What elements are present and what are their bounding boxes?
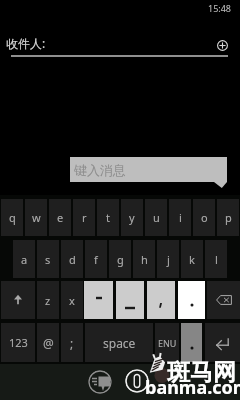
staticText: p [225, 210, 232, 225]
staticText: q [9, 210, 16, 225]
staticText: banma.com [145, 375, 240, 400]
staticText: k [189, 252, 195, 267]
button[interactable]: t [97, 199, 119, 236]
button[interactable]: d [61, 240, 83, 278]
button[interactable]: ; [61, 323, 83, 362]
staticText: o [201, 210, 208, 225]
staticText: d [69, 252, 76, 267]
button[interactable]: a [13, 240, 35, 278]
staticText: l [215, 252, 218, 267]
button[interactable]: underscore [116, 281, 144, 319]
button[interactable]: h [133, 240, 155, 278]
button[interactable]: Backspace [207, 281, 240, 319]
staticText: s [45, 252, 51, 267]
button[interactable]: s [37, 240, 59, 278]
button[interactable]: k [181, 240, 203, 278]
staticText: z [45, 293, 51, 308]
button[interactable]: Messages [88, 370, 112, 394]
button[interactable]: hyphen [84, 281, 113, 319]
button[interactable]: g [109, 240, 131, 278]
staticText: f [94, 252, 98, 267]
button[interactable]: o [193, 199, 215, 236]
button[interactable]: Shift [1, 281, 35, 319]
staticText: r [82, 210, 87, 225]
staticText: g [117, 252, 124, 267]
button[interactable]: e [49, 199, 71, 236]
staticText: ; [70, 335, 74, 351]
staticText: t [106, 210, 110, 225]
staticText: e [57, 210, 64, 225]
button[interactable]: ENU [155, 323, 179, 362]
button[interactable]: u [145, 199, 167, 236]
staticText: w [32, 210, 41, 225]
staticText: 123 [9, 335, 28, 350]
button[interactable]: z [37, 281, 59, 319]
button[interactable]: q [1, 199, 23, 236]
staticText: space [103, 335, 136, 351]
staticText: y [129, 210, 135, 225]
staticText: a [21, 252, 28, 267]
staticText: @ [43, 335, 54, 351]
button[interactable]: r [73, 199, 95, 236]
staticText: x [69, 293, 75, 308]
button[interactable]: comma [147, 281, 175, 319]
staticText: 键入消息 [74, 162, 126, 178]
button[interactable]: period [178, 281, 205, 319]
staticText: i [179, 210, 182, 225]
staticText: 15:48 [208, 2, 232, 14]
button[interactable]: space [85, 323, 153, 362]
button[interactable]: j [157, 240, 179, 278]
button[interactable]: Add recipient [217, 40, 228, 51]
staticText: h [141, 252, 148, 267]
staticText: 收件人: [6, 35, 46, 51]
button[interactable]: p [217, 199, 239, 236]
button[interactable]: f [85, 240, 107, 278]
button[interactable]: 123 [1, 323, 35, 362]
staticText: ENU [158, 337, 177, 349]
button[interactable]: @ [37, 323, 59, 362]
staticText: j [167, 252, 170, 267]
button[interactable]: period [181, 323, 202, 362]
button[interactable]: Attach [125, 369, 149, 393]
button[interactable]: i [169, 199, 191, 236]
button[interactable]: y [121, 199, 143, 236]
staticText: 斑马网 [167, 358, 236, 387]
button[interactable]: 键入消息 [70, 157, 227, 182]
button[interactable]: x [61, 281, 83, 319]
button[interactable]: Enter [205, 323, 240, 362]
button[interactable]: w [25, 199, 47, 236]
staticText: u [153, 210, 160, 225]
button[interactable]: l [205, 240, 227, 278]
